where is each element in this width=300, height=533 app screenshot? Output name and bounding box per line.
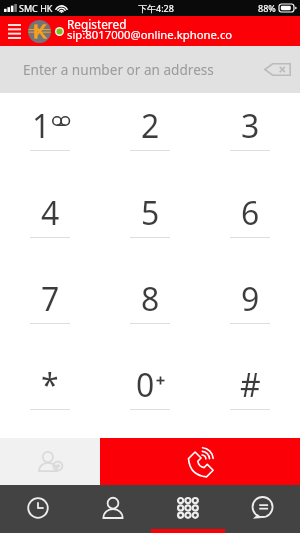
staticText: Registered: [67, 16, 127, 32]
button[interactable]: 9: [200, 266, 300, 352]
button[interactable]: 5: [100, 180, 200, 266]
button[interactable]: Messages: [225, 485, 300, 533]
staticText: 1: [32, 104, 51, 148]
button[interactable]: 2: [100, 93, 200, 180]
button[interactable]: 3: [200, 93, 300, 180]
button[interactable]: Keypad: [150, 485, 225, 533]
button[interactable]: 8: [100, 266, 200, 352]
staticText: 4: [41, 191, 60, 235]
staticText: *: [41, 363, 59, 407]
staticText: sip:8017000@online.kphone.co: [67, 27, 233, 42]
button[interactable]: Account status: [28, 16, 51, 46]
button[interactable]: 1: [0, 93, 100, 180]
button[interactable]: Backspace: [254, 46, 300, 93]
staticText: 8: [141, 277, 160, 321]
button[interactable]: 0: [100, 352, 200, 438]
staticText: SMC HK: [19, 2, 53, 14]
button[interactable]: 6: [200, 180, 300, 266]
staticText: Enter a number or an address: [23, 60, 214, 79]
button[interactable]: Contacts: [75, 485, 150, 533]
staticText: 0: [136, 363, 155, 407]
button[interactable]: Recent calls: [0, 485, 75, 533]
button[interactable]: Open navigation menu: [0, 16, 28, 46]
button[interactable]: Add contact: [0, 438, 100, 485]
staticText: 7: [41, 277, 60, 321]
button[interactable]: 7: [0, 266, 100, 352]
staticText: 9: [241, 277, 260, 321]
button[interactable]: *: [0, 352, 100, 438]
button[interactable]: Enter a number or an address: [0, 46, 300, 93]
button[interactable]: 4: [0, 180, 100, 266]
staticText: 下午4:28: [138, 2, 174, 14]
staticText: #: [240, 363, 261, 407]
staticText: 88%: [258, 2, 276, 14]
staticText: 3: [241, 104, 260, 148]
staticText: 2: [141, 104, 160, 148]
button[interactable]: #: [200, 352, 300, 438]
button[interactable]: Call: [100, 438, 300, 485]
staticText: 5: [141, 191, 160, 235]
staticText: 6: [241, 191, 260, 235]
